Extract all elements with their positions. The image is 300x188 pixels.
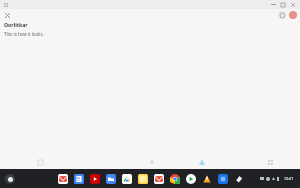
button[interactable]: White app [232,172,245,185]
button[interactable]: Add attachment [34,156,46,168]
button[interactable]: YouTube [88,172,101,185]
button[interactable]: Launcher [5,174,15,184]
button[interactable]: Cone app [200,172,213,185]
button[interactable]: Files [104,172,117,185]
button[interactable]: Background options [146,156,158,168]
button[interactable]: Chrome [168,172,181,185]
button[interactable]: Minimize [268,0,278,9]
staticText: Oorlitkar [4,21,28,28]
button[interactable]: Maximize [278,0,288,9]
staticText: 12:41 [284,176,294,181]
button[interactable]: Blue app [216,172,229,185]
button[interactable]: Drawing tool [195,155,209,169]
button[interactable]: Docs [72,172,85,185]
button[interactable]: Gmail [56,172,69,185]
button[interactable]: Information [278,11,286,19]
button[interactable]: Close [288,0,298,9]
button[interactable]: Mail [152,172,165,185]
button[interactable]: Switch view [264,156,276,168]
button[interactable]: Play Store [184,172,197,185]
button[interactable]: System status [258,174,296,183]
button[interactable]: Close note [2,10,12,20]
staticText: This is how it looks. [4,31,44,37]
button[interactable]: Drive [120,172,133,185]
button[interactable]: Account [289,11,297,19]
button[interactable]: Keep [136,172,149,185]
button[interactable]: App menu [3,2,8,7]
